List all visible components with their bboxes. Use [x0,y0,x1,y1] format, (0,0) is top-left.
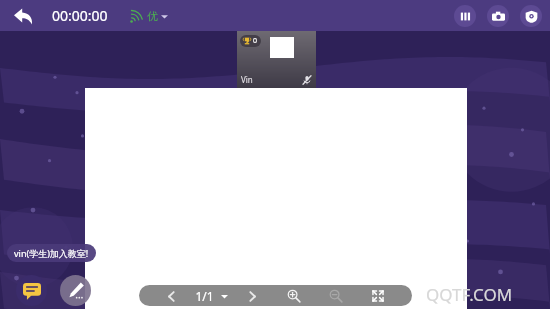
staticText: 0 [253,36,258,46]
staticText: Vin [241,74,253,85]
staticText: QQTF.COM [426,283,513,306]
button[interactable]: 优 [130,9,168,23]
button[interactable]: Fullscreen [368,286,388,306]
button[interactable]: Chat [16,275,47,306]
button[interactable]: Camera [487,5,509,27]
button[interactable]: Zoom in [284,286,304,306]
button[interactable]: 0 [237,31,316,88]
button[interactable]: Previous page [161,286,181,306]
button[interactable]: Draw [60,275,91,306]
button[interactable]: Back [8,1,38,31]
button[interactable]: Monitor [520,5,542,27]
button[interactable]: Layout [454,5,476,27]
staticText: vin(学生)加入教室! [14,247,89,259]
staticText: 00:00:00 [52,6,108,25]
button[interactable]: 1/1 [195,288,228,304]
button[interactable]: vin(学生)加入教室! [7,244,96,262]
staticText: 优 [147,9,158,23]
staticText: 1/1 [195,288,214,304]
button[interactable]: Next page [242,286,262,306]
button[interactable]: Zoom out [326,286,346,306]
